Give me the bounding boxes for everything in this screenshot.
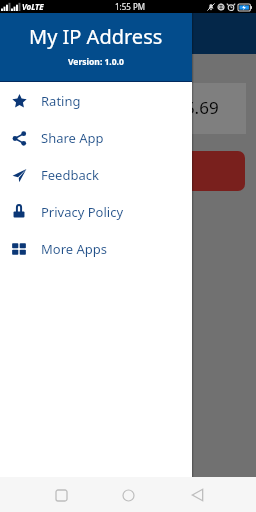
staticText: More Apps [41, 240, 108, 258]
button[interactable]: Home [115, 482, 141, 508]
staticText: Rating [41, 92, 81, 110]
button[interactable]: More Apps [0, 230, 192, 267]
button[interactable]: Rating [0, 82, 192, 119]
button[interactable]: Feedback [0, 156, 192, 193]
button[interactable]: Share App [0, 119, 192, 156]
button[interactable]: Recent apps [48, 482, 74, 508]
staticText: Version: 1.0.0 [68, 56, 124, 68]
staticText: 1:55 PM [115, 1, 146, 12]
button[interactable]: Back [184, 482, 210, 508]
staticText: Feedback [41, 166, 99, 184]
staticText: Privacy Policy [41, 203, 124, 221]
staticText: My IP Address [29, 23, 163, 50]
staticText: Share App [41, 129, 104, 147]
staticText: VoLTE [22, 1, 44, 12]
button[interactable]: Privacy Policy [0, 193, 192, 230]
staticText: Your IP is 192.168.5.69 [39, 96, 219, 119]
